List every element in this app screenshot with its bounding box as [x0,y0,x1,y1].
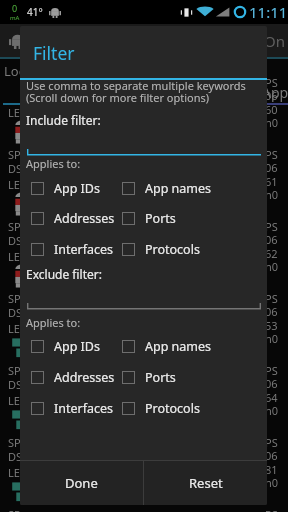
staticText: SP [8,435,21,450]
staticText: 81 [265,462,278,477]
staticText: PS [265,363,278,378]
staticText: 06 [265,448,278,463]
staticText: Addresses [54,369,115,386]
button[interactable]: Addresses [31,365,115,389]
staticText: 61 [265,174,278,189]
staticText: App names [145,180,212,197]
staticText: 06 [265,304,278,319]
staticText: SP [8,147,21,162]
staticText: 41° [27,5,43,19]
staticText: 60 [265,102,278,117]
other: Vibrate [180,6,193,19]
staticText: 06 [265,232,278,247]
staticText: 62 [265,246,278,261]
staticText: LE [8,465,20,480]
staticText: Addresses [54,210,115,227]
staticText: PS [265,291,278,306]
staticText: App names [145,338,212,355]
button[interactable]: Protocols [122,396,200,420]
staticText: 11:11 [249,2,288,22]
staticText: n0 [265,475,279,490]
staticText: LE [8,321,20,336]
staticText: Done [65,474,98,492]
staticText: Ports [145,210,176,227]
staticText: n0 [265,187,279,202]
button[interactable]: Addresses [31,206,115,230]
staticText: Ports [145,369,176,386]
staticText: Protocols [145,400,200,417]
staticText: PS [265,75,278,90]
button[interactable]: App names [122,334,212,358]
staticText: 0 [12,2,18,14]
staticText: mA [10,14,20,22]
staticText: DS [8,449,23,464]
staticText: Exclude filter: [26,266,102,282]
staticText: Applies to: [26,156,81,171]
staticText: SP [8,219,21,234]
staticText: Use comma to separate multiple keywords [26,78,246,93]
staticText: On [264,31,285,51]
other: Wi-Fi [196,5,214,19]
staticText: Apps [262,83,288,102]
button[interactable] [27,302,261,310]
staticText: PS [265,507,278,512]
staticText: App IDs [54,338,100,355]
button[interactable]: App names [122,176,212,200]
button[interactable] [27,148,261,156]
staticText: LE [8,249,20,264]
staticText: n0 [265,259,279,274]
staticText: PS [265,435,278,450]
staticText: Filter [33,41,75,65]
staticText: (Scroll down for more filter options) [26,90,210,105]
button[interactable]: Interfaces [31,396,114,420]
staticText: n0 [265,403,279,418]
staticText: DS [8,161,23,176]
staticText: 06 [265,376,278,391]
staticText: n0 [265,115,279,130]
staticText: LE [8,177,20,192]
staticText: 06 [265,88,278,103]
staticText: DS [8,305,23,320]
staticText: 06 [265,160,278,175]
staticText: Interfaces [54,400,114,417]
staticText: DS [8,233,23,248]
staticText: PS [265,147,278,162]
staticText: DS [8,377,23,392]
staticText: PS [265,219,278,234]
staticText: Log [4,62,27,80]
staticText: Include filter: [26,112,101,128]
button[interactable]: Ports [122,365,176,389]
other: Signal [215,5,230,19]
button[interactable]: Reset [144,461,267,505]
other: App icon [9,32,26,49]
staticText: Protocols [145,241,200,258]
button[interactable]: App IDs [31,176,100,200]
staticText: SP [8,291,21,306]
button[interactable]: Done [20,461,143,505]
staticText: n0 [265,331,279,346]
staticText: LE [8,105,20,120]
staticText: App IDs [54,180,100,197]
staticText: LE [8,393,20,408]
button[interactable]: Protocols [122,237,200,261]
staticText: Applies to: [26,315,81,330]
staticText: SP [8,507,21,512]
staticText: Reset [189,474,223,492]
button[interactable]: App IDs [31,334,100,358]
staticText: SP [8,363,21,378]
staticText: Interfaces [54,241,114,258]
staticText: 64 [265,390,278,405]
button[interactable]: Ports [122,206,176,230]
button[interactable]: Interfaces [31,237,114,261]
staticText: 53 [265,318,278,333]
